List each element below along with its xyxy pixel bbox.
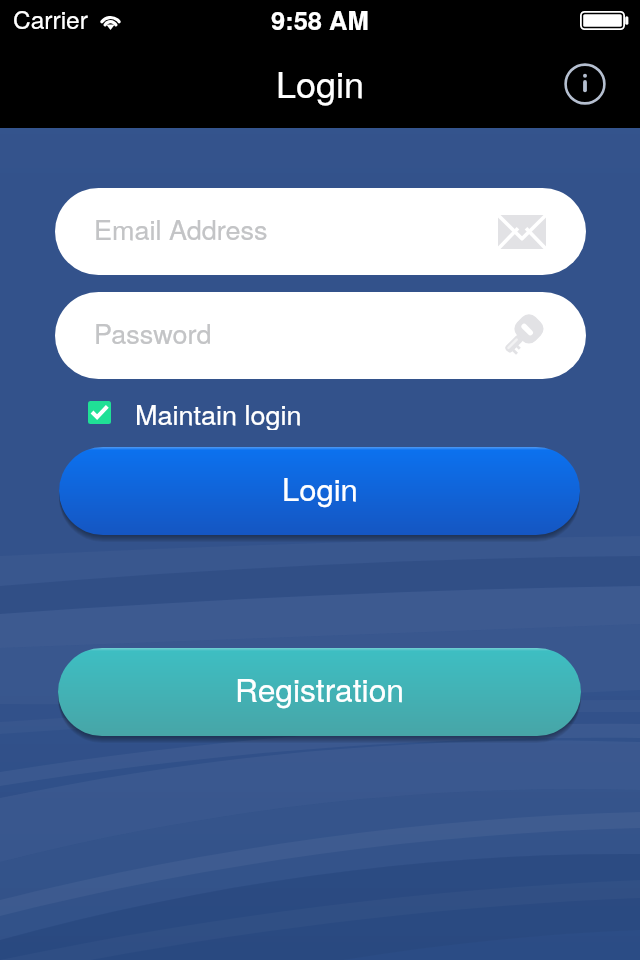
staticText: 9:58 AM — [271, 1, 369, 38]
staticText: Maintain login — [135, 394, 302, 430]
button[interactable]: Info — [557, 56, 613, 112]
staticText: Login — [276, 57, 365, 109]
staticText: Email Address — [94, 209, 268, 248]
button[interactable]: Login — [59, 447, 580, 535]
button[interactable]: Registration — [58, 648, 581, 736]
staticText: Password — [94, 313, 212, 352]
staticText: Registration — [235, 665, 405, 711]
staticText: Login — [282, 465, 358, 509]
button[interactable]: Email Address — [55, 188, 586, 275]
button[interactable]: Maintain login — [88, 394, 302, 430]
staticText: Carrier — [13, 1, 88, 36]
button[interactable]: Password — [55, 292, 586, 379]
